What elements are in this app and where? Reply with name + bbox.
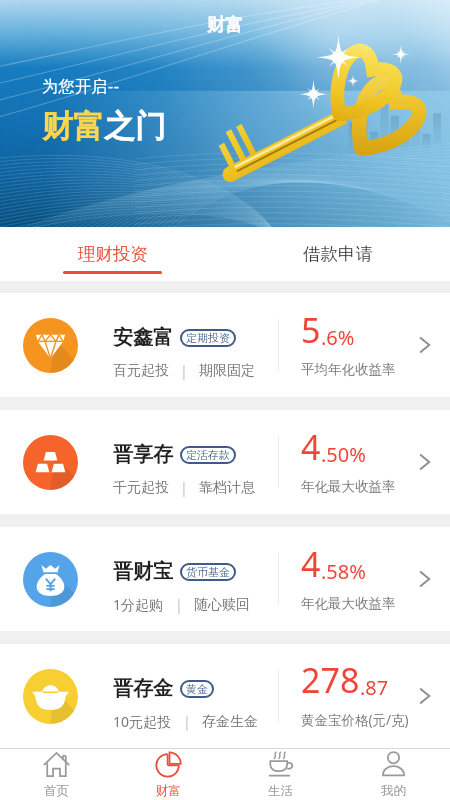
- staticText: .58%: [321, 558, 366, 585]
- other: 详情: [418, 334, 432, 356]
- button[interactable]: 首页: [0, 749, 112, 800]
- other: 详情: [418, 685, 432, 707]
- staticText: 278: [301, 657, 360, 703]
- staticText: 平均年化收益率: [301, 361, 396, 378]
- staticText: 财富: [42, 107, 104, 146]
- staticText: .50%: [321, 441, 366, 468]
- button[interactable]: 晋享存: [0, 410, 450, 514]
- staticText: 随心赎回: [194, 596, 250, 614]
- staticText: 1分起购: [113, 595, 164, 614]
- button[interactable]: 安鑫富: [0, 293, 450, 397]
- staticText: 10元起投: [113, 712, 172, 731]
- staticText: |: [172, 712, 202, 731]
- button[interactable]: 晋财宝: [0, 527, 450, 631]
- staticText: 年化最大收益率: [301, 478, 396, 495]
- staticText: 4: [301, 541, 321, 587]
- staticText: 期限固定: [199, 362, 255, 380]
- staticText: 年化最大收益率: [301, 595, 396, 612]
- other: 详情: [418, 451, 432, 473]
- staticText: 财富: [156, 783, 181, 799]
- staticText: 生活: [268, 783, 293, 799]
- staticText: 定活存款: [186, 448, 230, 462]
- staticText: 首页: [44, 783, 69, 799]
- staticText: 晋财宝: [113, 559, 173, 584]
- staticText: .87: [360, 674, 389, 701]
- staticText: 货币基金: [186, 565, 230, 579]
- staticText: 4: [301, 424, 321, 470]
- staticText: 我的: [381, 783, 406, 799]
- staticText: 5: [301, 307, 321, 353]
- button[interactable]: 财富: [112, 749, 224, 800]
- staticText: 财富: [207, 14, 243, 37]
- staticText: 借款申请: [303, 243, 373, 265]
- button[interactable]: 我的: [337, 749, 450, 800]
- other: 详情: [418, 568, 432, 590]
- staticText: .6%: [321, 324, 355, 351]
- staticText: 之门: [104, 107, 166, 146]
- staticText: |: [169, 361, 199, 380]
- staticText: 千元起投: [113, 479, 169, 497]
- staticText: 黄金宝价格(元/克): [301, 711, 409, 729]
- staticText: |: [169, 478, 199, 497]
- staticText: 晋存金: [113, 676, 173, 701]
- staticText: 为您开启--: [42, 75, 120, 97]
- staticText: 定期投资: [186, 331, 230, 345]
- staticText: |: [164, 595, 194, 614]
- staticText: 理财投资: [78, 243, 148, 265]
- staticText: 安鑫富: [113, 325, 173, 350]
- staticText: 靠档计息: [199, 479, 255, 497]
- staticText: 晋享存: [113, 442, 173, 467]
- button[interactable]: 生活: [224, 749, 337, 800]
- button[interactable]: 理财投资: [0, 227, 225, 281]
- button[interactable]: 晋存金: [0, 644, 450, 748]
- staticText: 黄金: [186, 682, 208, 696]
- staticText: 存金生金: [202, 713, 258, 731]
- button[interactable]: 借款申请: [225, 227, 450, 281]
- staticText: 百元起投: [113, 362, 169, 380]
